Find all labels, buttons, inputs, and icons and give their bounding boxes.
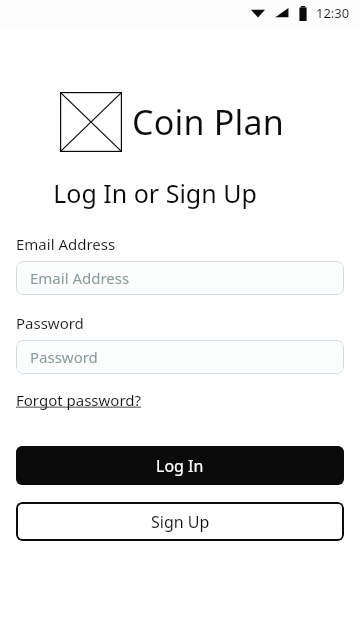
button[interactable]: Sign Up: [16, 502, 344, 541]
staticText: Log In: [156, 455, 204, 477]
staticText: Log In or Sign Up: [0, 176, 310, 210]
button[interactable]: Password: [16, 340, 344, 374]
staticText: Coin Plan: [132, 99, 284, 145]
button[interactable]: Log In: [16, 446, 344, 485]
staticText: Email Address: [16, 234, 116, 254]
staticText: Forgot password?: [16, 390, 142, 410]
staticText: Password: [30, 347, 98, 367]
staticText: Email Address: [30, 268, 130, 288]
staticText: Password: [16, 313, 84, 333]
button[interactable]: Email Address: [16, 261, 344, 295]
button[interactable]: Forgot password?: [16, 390, 142, 410]
staticText: Sign Up: [151, 511, 210, 533]
staticText: 12:30: [316, 4, 350, 22]
